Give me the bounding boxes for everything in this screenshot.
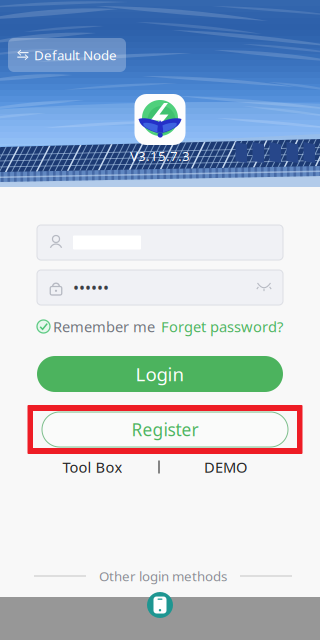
button[interactable]: Tool Box [26,459,158,475]
button[interactable]: Default Node [8,38,126,72]
staticText: Register [131,418,198,441]
staticText: Default Node [34,46,117,64]
button[interactable]: Forget password? [161,317,283,336]
staticText: Remember me [53,317,155,336]
staticText: Tool Box [62,457,122,477]
button[interactable]: Mobile number login [147,592,173,618]
staticText: DEMO [204,457,247,477]
button[interactable]: Login [37,356,283,392]
button[interactable]: Register [42,412,288,447]
staticText: Other login methods [99,567,227,585]
button[interactable]: Remember me [37,318,156,334]
staticText: •••••• [73,277,109,298]
staticText: Login [135,362,184,386]
button[interactable]: DEMO [160,459,292,475]
button[interactable]: Show password [254,277,274,297]
staticText: Forget password? [161,317,283,336]
staticText: V3.15.7.3 [130,147,190,165]
